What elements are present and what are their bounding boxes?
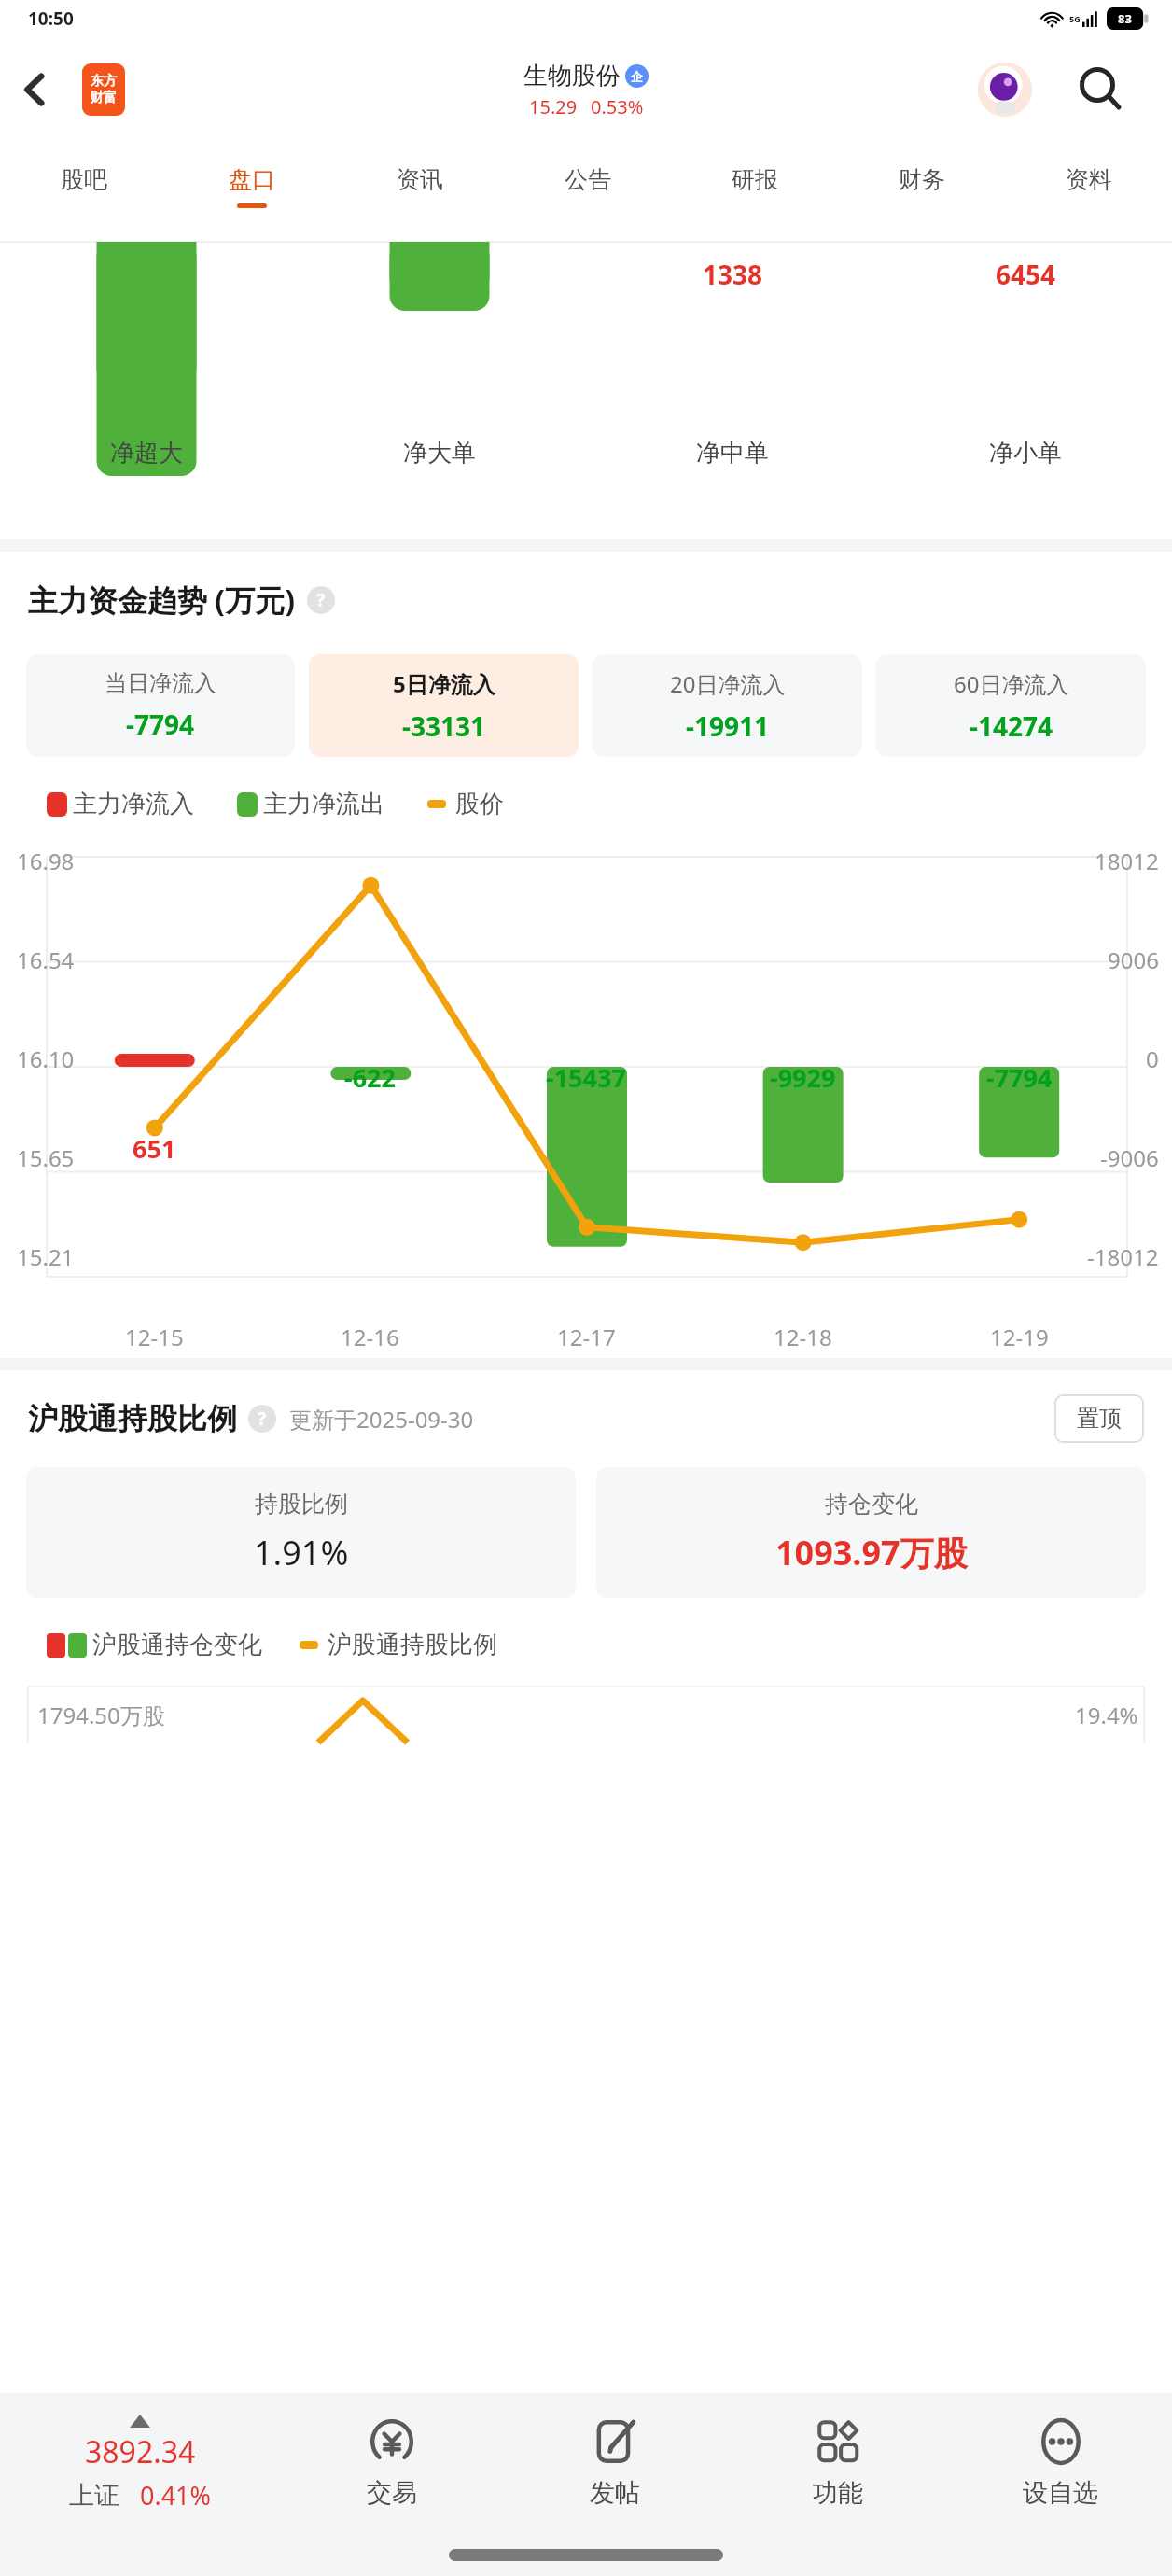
- staticText: -18012: [1087, 1241, 1159, 1272]
- staticText: 生物股份: [523, 61, 621, 91]
- button[interactable]: 东方财富: [82, 63, 125, 116]
- button[interactable]: 公告: [504, 142, 671, 231]
- staticText: 财富: [91, 90, 117, 106]
- staticText: 1794.50万股: [37, 1700, 165, 1730]
- button[interactable]: 净大单: [293, 438, 586, 469]
- staticText: 0: [1146, 1043, 1159, 1074]
- button[interactable]: AI助手: [976, 61, 1034, 119]
- button[interactable]: Search: [1067, 56, 1135, 123]
- staticText: 资讯: [397, 165, 443, 194]
- staticText: 651: [133, 1131, 176, 1166]
- staticText: 15.65: [17, 1142, 75, 1173]
- button[interactable]: 资讯: [336, 142, 504, 231]
- button[interactable]: 交易: [280, 2393, 503, 2533]
- button[interactable]: 5日净流入: [309, 654, 579, 757]
- button[interactable]: 说明: [248, 1405, 276, 1433]
- staticText: 5G: [1069, 13, 1081, 24]
- staticText: -7794: [126, 707, 195, 742]
- button[interactable]: 研报: [671, 142, 838, 231]
- staticText: 12-18: [774, 1322, 832, 1352]
- button[interactable]: 置顶: [1054, 1394, 1144, 1443]
- button[interactable]: 持股比例: [26, 1467, 576, 1598]
- staticText: 0.53%: [591, 94, 644, 119]
- button[interactable]: 资料: [1005, 142, 1172, 231]
- staticText: 12-17: [557, 1322, 616, 1352]
- staticText: -9929: [770, 1060, 836, 1095]
- staticText: 18012: [1095, 846, 1159, 876]
- staticText: 0.41%: [140, 2478, 212, 2513]
- staticText: 净中单: [696, 438, 769, 469]
- staticText: 发帖: [590, 2477, 640, 2509]
- staticText: 12-16: [341, 1322, 399, 1352]
- staticText: 股吧: [61, 165, 107, 194]
- staticText: 研报: [732, 165, 778, 194]
- staticText: 6454: [996, 257, 1056, 292]
- button[interactable]: 功能: [726, 2393, 949, 2533]
- button[interactable]: 60日净流入: [876, 654, 1146, 757]
- staticText: -19911: [686, 708, 770, 744]
- button[interactable]: 持仓变化: [596, 1467, 1146, 1598]
- staticText: 主力净流入: [73, 789, 194, 819]
- button[interactable]: 净超大: [0, 438, 293, 469]
- staticText: 12-15: [125, 1322, 184, 1352]
- staticText: -14274: [970, 708, 1053, 744]
- staticText: 20日净流入: [670, 668, 786, 699]
- button[interactable]: 说明: [307, 586, 335, 614]
- button[interactable]: 股吧: [0, 142, 168, 231]
- button[interactable]: 3892.34: [0, 2393, 280, 2533]
- button[interactable]: 净中单: [586, 438, 879, 469]
- staticText: 10:50: [28, 7, 74, 31]
- staticText: 设自选: [1023, 2477, 1098, 2509]
- staticText: 1093.97万股: [775, 1530, 968, 1575]
- staticText: 置顶: [1077, 1405, 1122, 1433]
- staticText: 交易: [367, 2477, 417, 2509]
- staticText: 东方: [91, 73, 117, 90]
- staticText: 12-19: [990, 1322, 1049, 1352]
- staticText: 16.10: [17, 1043, 75, 1074]
- staticText: 9006: [1108, 945, 1159, 975]
- button[interactable]: 发帖: [503, 2393, 726, 2533]
- staticText: 持股比例: [255, 1490, 348, 1519]
- button[interactable]: 20日净流入: [593, 654, 862, 757]
- staticText: -622: [344, 1060, 396, 1095]
- staticText: 财务: [899, 165, 945, 194]
- staticText: 当日净流入: [105, 669, 216, 697]
- staticText: 资料: [1066, 165, 1112, 194]
- staticText: 60日净流入: [954, 668, 1069, 699]
- staticText: 净超大: [110, 438, 183, 469]
- staticText: ?: [316, 588, 326, 612]
- staticText: 持仓变化: [825, 1490, 918, 1519]
- button[interactable]: 当日净流入: [26, 654, 295, 757]
- staticText: 5日净流入: [393, 668, 495, 699]
- staticText: 公告: [565, 165, 611, 194]
- staticText: 1.91%: [254, 1530, 349, 1575]
- staticText: 16.54: [17, 945, 75, 975]
- staticText: 沪股通持仓变化: [92, 1630, 262, 1660]
- staticText: 主力资金趋势 (万元): [28, 580, 296, 621]
- staticText: 1338: [703, 257, 763, 292]
- staticText: ?: [258, 1407, 267, 1431]
- staticText: 沪股通持股比例: [328, 1630, 497, 1660]
- staticText: 净小单: [989, 438, 1062, 469]
- staticText: 企: [631, 69, 643, 84]
- staticText: -33131: [402, 708, 486, 744]
- button[interactable]: 财务: [838, 142, 1005, 231]
- staticText: 19.4%: [1075, 1700, 1138, 1730]
- button[interactable]: 设自选: [949, 2393, 1172, 2533]
- staticText: -15437: [546, 1060, 626, 1095]
- staticText: 3892.34: [85, 2431, 196, 2472]
- staticText: 上证: [69, 2480, 119, 2512]
- staticText: 主力净流出: [263, 789, 384, 819]
- button[interactable]: 净小单: [879, 438, 1172, 469]
- staticText: -9006: [1100, 1142, 1159, 1173]
- button[interactable]: Back: [15, 61, 54, 119]
- staticText: -7794: [986, 1060, 1053, 1095]
- staticText: 15.29: [529, 94, 578, 119]
- button[interactable]: 生物股份: [523, 61, 649, 119]
- button[interactable]: 盘口: [168, 142, 336, 231]
- staticText: 股价: [455, 789, 504, 819]
- staticText: 功能: [813, 2477, 863, 2509]
- staticText: 更新于2025-09-30: [289, 1404, 474, 1435]
- staticText: 净大单: [403, 438, 476, 469]
- staticText: 83: [1107, 10, 1143, 27]
